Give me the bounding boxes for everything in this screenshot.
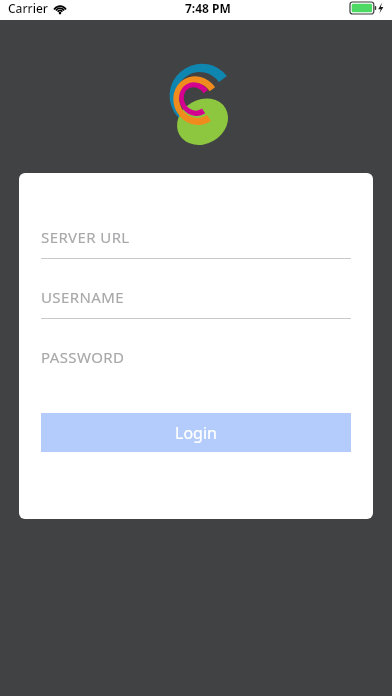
button[interactable]: PASSWORD xyxy=(41,345,351,379)
staticText: SERVER URL xyxy=(41,227,130,247)
button[interactable]: SERVER URL xyxy=(41,225,351,259)
button[interactable]: Login xyxy=(41,413,351,452)
staticText: 7:48 PM xyxy=(185,0,231,16)
staticText: Login xyxy=(175,422,217,444)
staticText: USERNAME xyxy=(41,287,125,307)
button[interactable]: USERNAME xyxy=(41,285,351,319)
staticText: PASSWORD xyxy=(41,347,125,367)
staticText: Carrier xyxy=(8,0,48,16)
